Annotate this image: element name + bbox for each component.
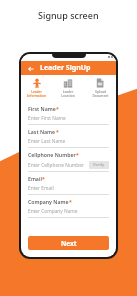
- staticText: Next: [61, 239, 77, 248]
- staticText: Enter Last Name: [28, 138, 66, 145]
- button[interactable]: Leader Location: [52, 75, 84, 99]
- staticText: *: [56, 105, 59, 112]
- staticText: *: [76, 151, 79, 158]
- staticText: Leader SignUp: [40, 63, 91, 73]
- staticText: Company Name: [28, 198, 69, 205]
- button[interactable]: Verify: [89, 161, 109, 169]
- staticText: Enter Cellphone Number: [28, 162, 84, 169]
- staticText: *: [69, 198, 72, 205]
- staticText: Enter Company Name: [28, 208, 78, 215]
- staticText: *: [42, 175, 45, 182]
- button[interactable]: Back: [26, 64, 35, 73]
- staticText: First Name: [28, 105, 56, 112]
- staticText: Enter First Name: [28, 115, 66, 122]
- button[interactable]: Upload Document: [84, 75, 116, 99]
- button[interactable]: Next: [28, 236, 109, 250]
- staticText: Leader Location: [61, 90, 75, 98]
- button[interactable]: Leader Information: [21, 75, 52, 99]
- staticText: Leader Information: [27, 90, 46, 98]
- staticText: *: [56, 128, 59, 135]
- staticText: Upload Document: [92, 90, 109, 98]
- staticText: Verify: [93, 162, 105, 168]
- staticText: Signup screen: [38, 9, 99, 21]
- staticText: Enter Email: [28, 185, 54, 192]
- staticText: Last Name: [28, 128, 56, 135]
- staticText: Cellphone Number: [28, 151, 76, 158]
- staticText: Email: [28, 175, 42, 182]
